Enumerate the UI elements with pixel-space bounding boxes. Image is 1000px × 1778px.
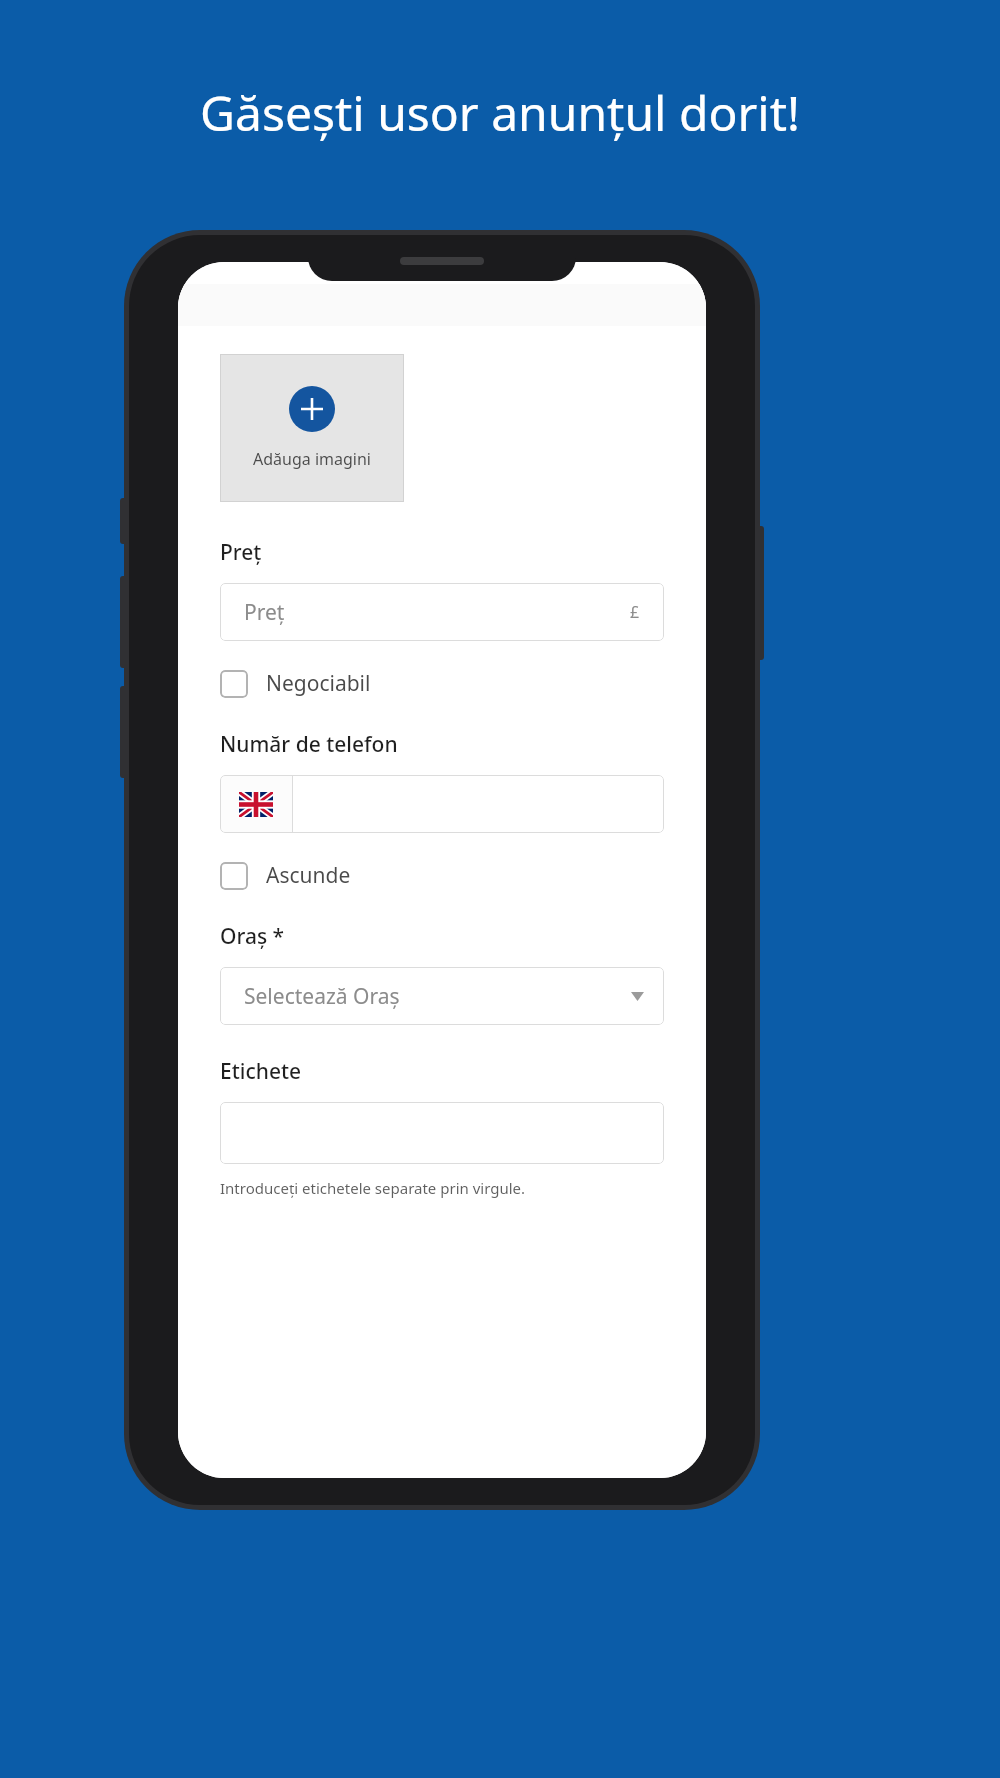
staticText: Oraș * <box>220 922 285 951</box>
button[interactable]: Preț <box>220 583 664 641</box>
button[interactable]: Adăuga imagini <box>220 354 404 502</box>
staticText: Număr de telefon <box>220 730 398 759</box>
staticText: Preț <box>244 598 285 627</box>
other: United Kingdom flag <box>239 792 273 817</box>
button[interactable]: Selectează Oraș <box>220 967 664 1025</box>
button[interactable] <box>220 1102 664 1164</box>
staticText: Introduceți etichetele separate prin vir… <box>220 1178 526 1198</box>
staticText: £ <box>630 601 640 623</box>
staticText: Găsești usor anunțul dorit! <box>200 80 800 145</box>
button[interactable]: United Kingdom flag <box>220 775 664 833</box>
button[interactable]: Negociabil <box>220 669 664 698</box>
staticText: Adăuga imagini <box>253 448 371 470</box>
button[interactable]: Ascunde <box>220 861 664 890</box>
staticText: Negociabil <box>266 669 371 698</box>
staticText: Etichete <box>220 1057 302 1086</box>
staticText: Preț <box>220 538 262 567</box>
staticText: Selectează Oraș <box>244 982 400 1011</box>
staticText: Ascunde <box>266 861 351 890</box>
